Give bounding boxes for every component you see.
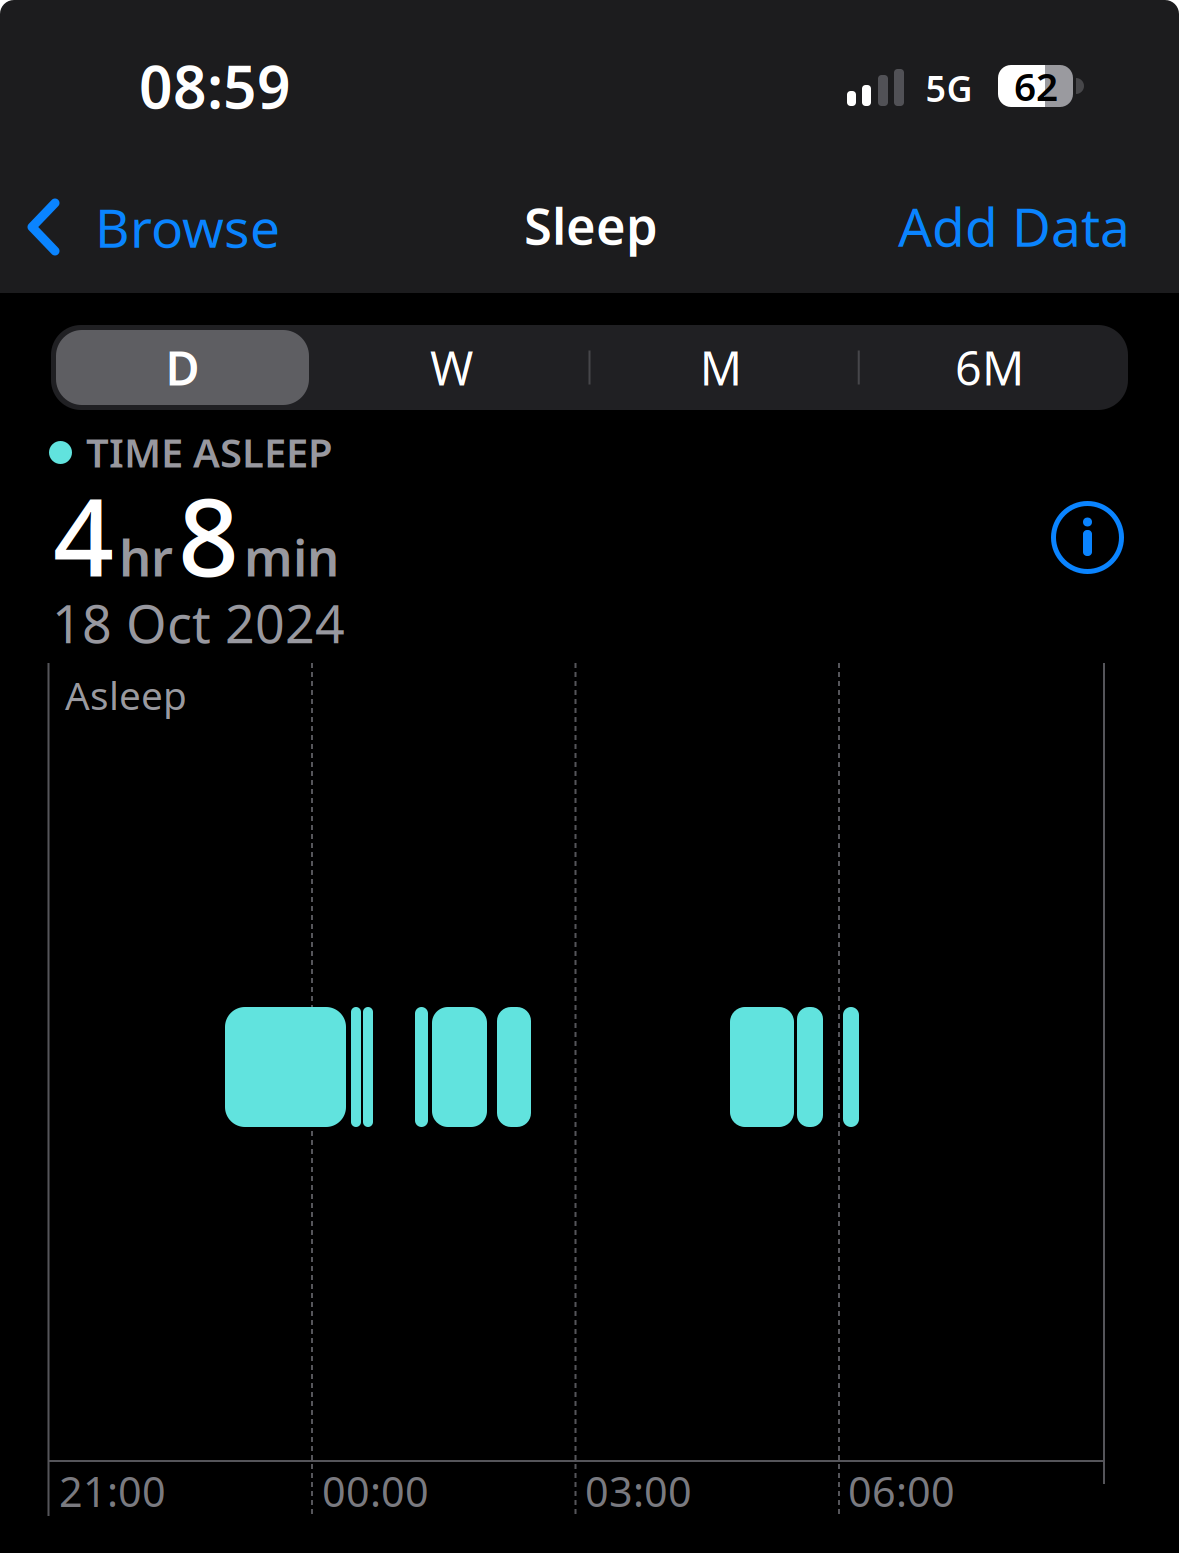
- button[interactable]: D: [51, 325, 313, 410]
- staticText: 00:00: [322, 1464, 429, 1518]
- staticText: 62: [1014, 60, 1058, 112]
- staticText: TIME ASLEEP: [86, 425, 333, 478]
- button[interactable]: Add Data: [0, 191, 1179, 261]
- staticText: D: [165, 336, 199, 398]
- button[interactable]: M: [590, 325, 852, 410]
- staticText: Asleep: [65, 669, 187, 721]
- button[interactable]: 6M: [858, 325, 1120, 410]
- staticText: 06:00: [848, 1464, 955, 1518]
- staticText: 18 Oct 2024: [52, 588, 345, 658]
- staticText: 4: [53, 464, 114, 606]
- staticText: 08:59: [139, 47, 291, 125]
- staticText: M: [700, 336, 742, 398]
- staticText: W: [430, 336, 473, 398]
- staticText: 03:00: [585, 1464, 692, 1518]
- staticText: 6M: [955, 336, 1024, 398]
- staticText: min: [244, 523, 339, 590]
- staticText: Add Data: [898, 191, 1130, 261]
- staticText: hr: [119, 523, 173, 590]
- button[interactable]: [1051, 501, 1123, 573]
- staticText: 8: [178, 464, 239, 606]
- staticText: 21:00: [59, 1464, 166, 1518]
- staticText: Sleep: [524, 191, 658, 259]
- button[interactable]: Browse: [0, 192, 1179, 262]
- button[interactable]: W: [320, 325, 582, 410]
- staticText: 5G: [925, 64, 972, 112]
- staticText: Browse: [95, 192, 280, 262]
